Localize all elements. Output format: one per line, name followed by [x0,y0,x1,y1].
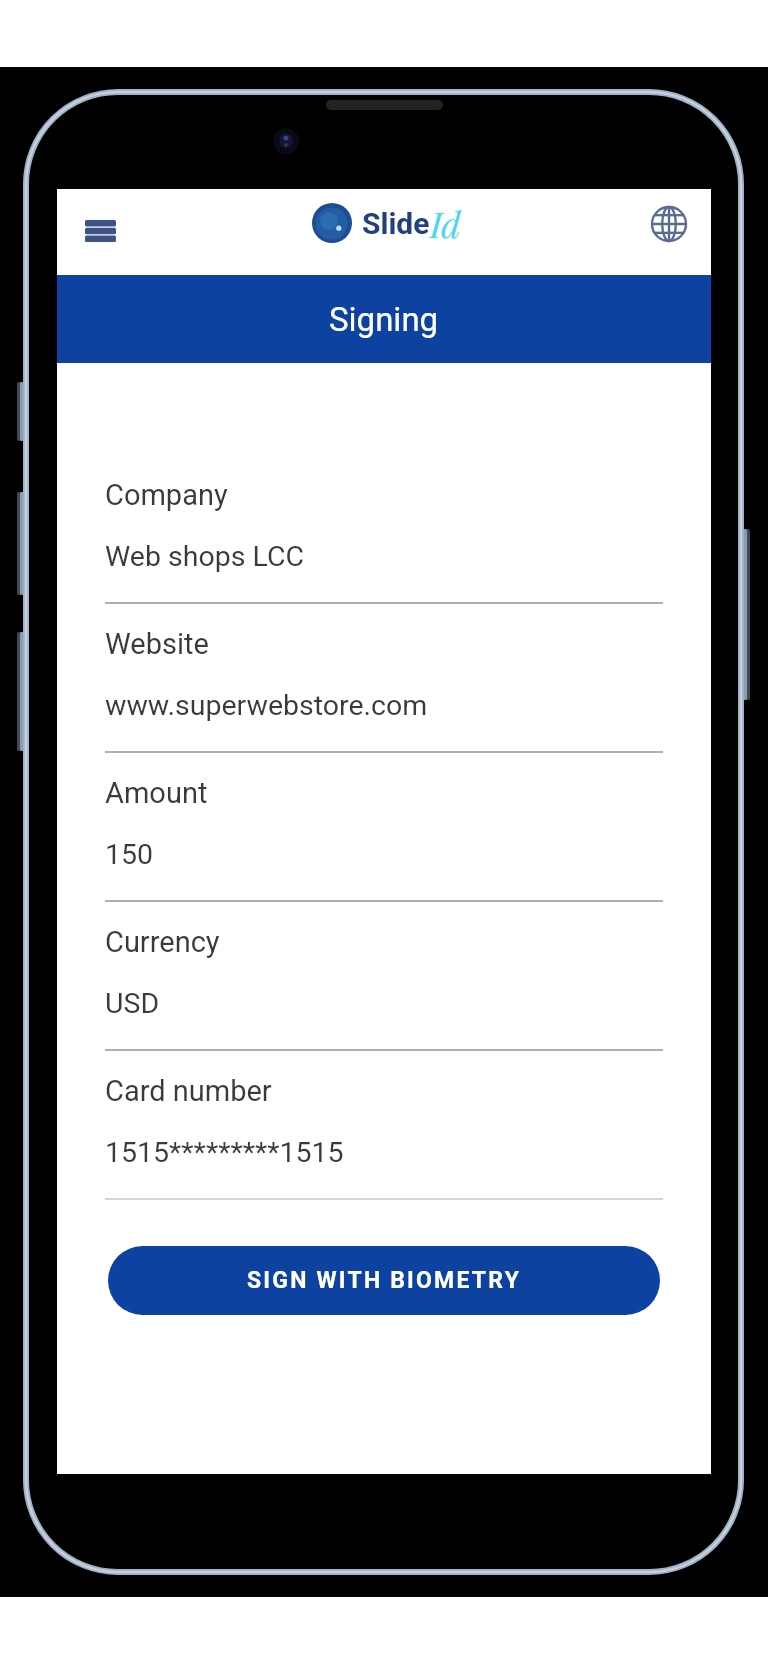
staticText: SIGN WITH BIOMETRY [247,1267,522,1294]
staticText: Signing [329,300,439,339]
staticText: Card number [105,1074,272,1108]
staticText: Web shops LCC [105,540,305,573]
staticText: Company [105,478,228,512]
staticText: Slide [362,206,430,241]
staticText: 1515*********1515 [105,1136,344,1169]
staticText: Amount [105,776,208,810]
staticText: Currency [105,925,220,959]
button[interactable]: SIGN WITH BIOMETRY [108,1246,660,1315]
staticText: 150 [105,838,154,871]
staticText: www.superwebstore.com [105,689,428,722]
staticText: Website [105,627,209,661]
staticText: USD [105,987,160,1020]
staticText: Id [430,199,461,247]
button[interactable]: Menu [68,199,132,263]
button[interactable]: Language [641,196,697,252]
